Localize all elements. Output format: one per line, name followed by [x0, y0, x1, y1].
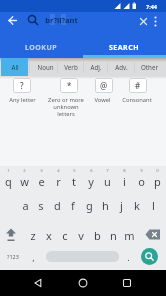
button[interactable]: Noun	[31, 58, 59, 76]
staticText: Consonant	[122, 96, 152, 104]
staticText: Any letter	[9, 96, 36, 104]
button[interactable]: g	[81, 197, 97, 214]
staticText: 1	[7, 168, 10, 174]
button[interactable]: h	[97, 197, 113, 214]
button[interactable]: #	[129, 78, 147, 93]
staticText: Vowel	[94, 96, 111, 104]
staticText: 7	[106, 168, 109, 174]
staticText: g	[86, 198, 93, 213]
button[interactable]	[117, 273, 137, 293]
staticText: 0	[156, 168, 159, 174]
button[interactable]: j	[113, 197, 129, 214]
staticText: s	[38, 198, 44, 213]
button[interactable]: ?	[13, 78, 31, 93]
button[interactable]: u	[99, 173, 115, 190]
staticText: o	[138, 174, 145, 189]
staticText: h	[102, 198, 109, 213]
staticText: All	[11, 63, 19, 71]
staticText: k	[134, 198, 140, 213]
button[interactable]: ,	[27, 250, 39, 263]
staticText: Adv.	[115, 63, 128, 71]
staticText: Noun	[37, 63, 54, 71]
button[interactable]	[1, 58, 28, 76]
button[interactable]: i	[116, 173, 132, 190]
button[interactable]: .	[122, 250, 134, 263]
staticText: Adj.	[90, 63, 102, 71]
staticText: l	[152, 198, 155, 213]
staticText: ?123	[7, 253, 19, 260]
staticText: @	[100, 80, 108, 91]
staticText: i	[123, 174, 126, 189]
staticText: Zero or more unknown letters	[48, 96, 84, 118]
button[interactable]: s	[33, 197, 49, 214]
staticText: u	[104, 174, 111, 189]
staticText: 4	[57, 168, 60, 174]
button[interactable]	[5, 13, 20, 28]
staticText: x	[46, 228, 52, 243]
button[interactable]: d	[49, 197, 65, 214]
button[interactable]: l	[145, 197, 161, 214]
button[interactable]: LOOKUP	[0, 40, 83, 55]
button[interactable]	[2, 226, 20, 243]
staticText: 8	[123, 168, 126, 174]
button[interactable]: c	[57, 227, 73, 244]
button[interactable]: SEARCH	[83, 40, 166, 55]
staticText: LOOKUP	[25, 43, 58, 53]
staticText: n	[110, 228, 117, 243]
button[interactable]: b	[89, 227, 105, 244]
staticText: q	[5, 174, 12, 189]
button[interactable]: t	[66, 173, 82, 190]
button[interactable]	[138, 16, 149, 27]
button[interactable]: p	[149, 173, 165, 190]
button[interactable]: o	[133, 173, 149, 190]
button[interactable]: Other	[135, 58, 164, 76]
staticText: b	[94, 228, 101, 243]
staticText: c	[62, 228, 68, 243]
staticText: SEARCH	[109, 43, 140, 53]
button[interactable]: a	[17, 197, 33, 214]
button[interactable]: x	[41, 227, 57, 244]
button[interactable]	[73, 273, 93, 293]
staticText: w	[20, 174, 29, 189]
staticText: ?	[20, 80, 24, 91]
button[interactable]: z	[25, 227, 41, 244]
staticText: j	[120, 198, 123, 213]
staticText: r	[56, 174, 61, 189]
button[interactable]	[144, 228, 163, 241]
staticText: 7:44	[146, 3, 157, 10]
staticText: a	[22, 198, 29, 213]
staticText: 5	[73, 168, 76, 174]
button[interactable]: *	[60, 78, 78, 93]
staticText: 9	[140, 168, 143, 174]
button[interactable]: Adj.	[84, 58, 107, 76]
button[interactable]: n	[105, 227, 121, 244]
staticText: #	[135, 80, 141, 91]
staticText: d	[54, 198, 61, 213]
staticText: 2	[23, 168, 26, 174]
button[interactable]	[46, 251, 119, 262]
button[interactable]: k	[129, 197, 145, 214]
button[interactable]: v	[73, 227, 89, 244]
staticText: ,	[32, 251, 35, 263]
button[interactable]: @	[95, 78, 113, 93]
button[interactable]: Verb	[58, 58, 84, 76]
button[interactable]: ?123	[2, 249, 24, 264]
button[interactable]: r	[50, 173, 66, 190]
button[interactable]	[141, 248, 158, 265]
button[interactable]	[28, 273, 48, 293]
staticText: Other	[141, 63, 158, 71]
button[interactable]	[151, 15, 160, 28]
button[interactable]: f	[65, 197, 81, 214]
staticText: 3	[40, 168, 43, 174]
button[interactable]: q	[0, 173, 16, 190]
staticText: f	[71, 198, 75, 213]
staticText: z	[30, 228, 36, 243]
button[interactable]: Adv.	[108, 58, 134, 76]
staticText: .	[127, 251, 130, 263]
staticText: y	[88, 174, 94, 189]
staticText: e	[38, 174, 45, 189]
button[interactable]: y	[83, 173, 99, 190]
button[interactable]: m	[121, 227, 137, 244]
button[interactable]: w	[16, 173, 32, 190]
button[interactable]: e	[33, 173, 49, 190]
